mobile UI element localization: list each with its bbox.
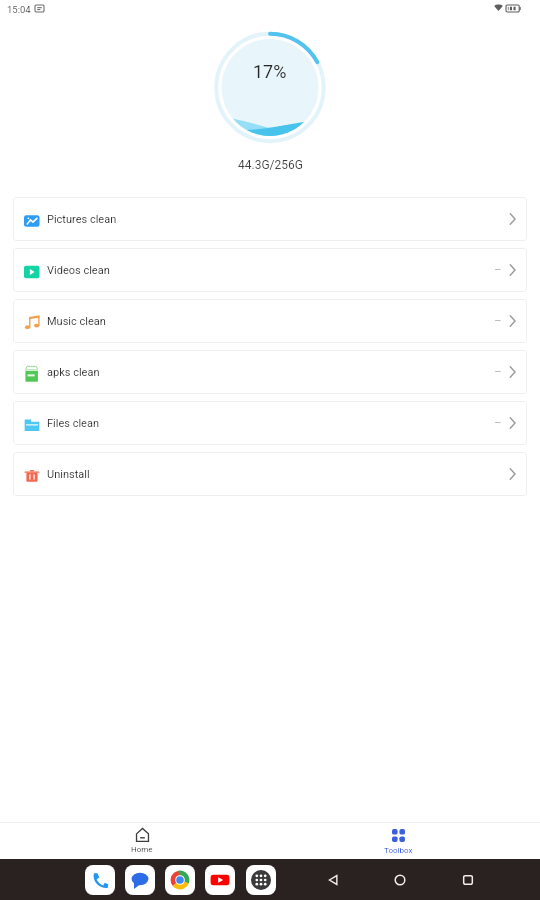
staticText: --	[495, 264, 501, 276]
button[interactable]: Messages	[125, 865, 155, 895]
staticText: Uninstall	[47, 468, 90, 481]
button[interactable]: Music clean	[13, 299, 527, 343]
button[interactable]: Home	[104, 823, 180, 859]
button[interactable]: Recents	[453, 865, 483, 895]
staticText: --	[495, 315, 501, 327]
staticText: Videos clean	[47, 264, 110, 277]
staticText: Home	[131, 845, 153, 854]
staticText: Toolbox	[384, 846, 413, 855]
staticText: Music clean	[47, 315, 106, 328]
button[interactable]: Files clean	[13, 401, 527, 445]
button[interactable]: Pictures clean	[13, 197, 527, 241]
staticText: apks clean	[47, 366, 100, 379]
button[interactable]: Home	[385, 865, 415, 895]
button[interactable]: YouTube	[205, 865, 235, 895]
button[interactable]: apks clean	[13, 350, 527, 394]
staticText: Pictures clean	[47, 213, 117, 226]
staticText: --	[495, 417, 501, 429]
staticText: Files clean	[47, 417, 99, 430]
button[interactable]: Phone	[85, 865, 115, 895]
staticText: 17%	[253, 61, 287, 82]
staticText: 15:04	[7, 4, 31, 15]
button[interactable]: Videos clean	[13, 248, 527, 292]
button[interactable]: Chrome	[165, 865, 195, 895]
button[interactable]: Toolbox	[360, 823, 436, 859]
staticText: --	[495, 366, 501, 378]
button[interactable]: Back	[318, 865, 348, 895]
button[interactable]: Uninstall	[13, 452, 527, 496]
staticText: 44.3G/256G	[238, 158, 303, 172]
button[interactable]: Apps	[246, 865, 276, 895]
